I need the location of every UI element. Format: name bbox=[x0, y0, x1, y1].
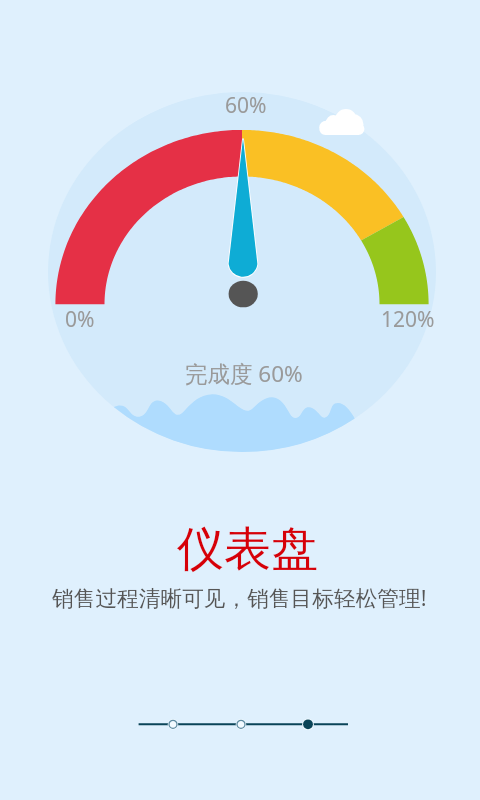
staticText: 120% bbox=[381, 305, 435, 334]
button[interactable]: Page 3, current bbox=[293, 709, 323, 739]
staticText: 0% bbox=[65, 305, 95, 334]
button[interactable]: Page 2 bbox=[226, 709, 256, 739]
button[interactable]: Page 1 bbox=[158, 709, 188, 739]
staticText: 仪表盘 bbox=[177, 520, 318, 579]
staticText: 60% bbox=[225, 91, 267, 120]
staticText: 销售过程清晰可见，销售目标轻松管理! bbox=[52, 583, 427, 613]
staticText: 完成度 60% bbox=[185, 358, 303, 389]
